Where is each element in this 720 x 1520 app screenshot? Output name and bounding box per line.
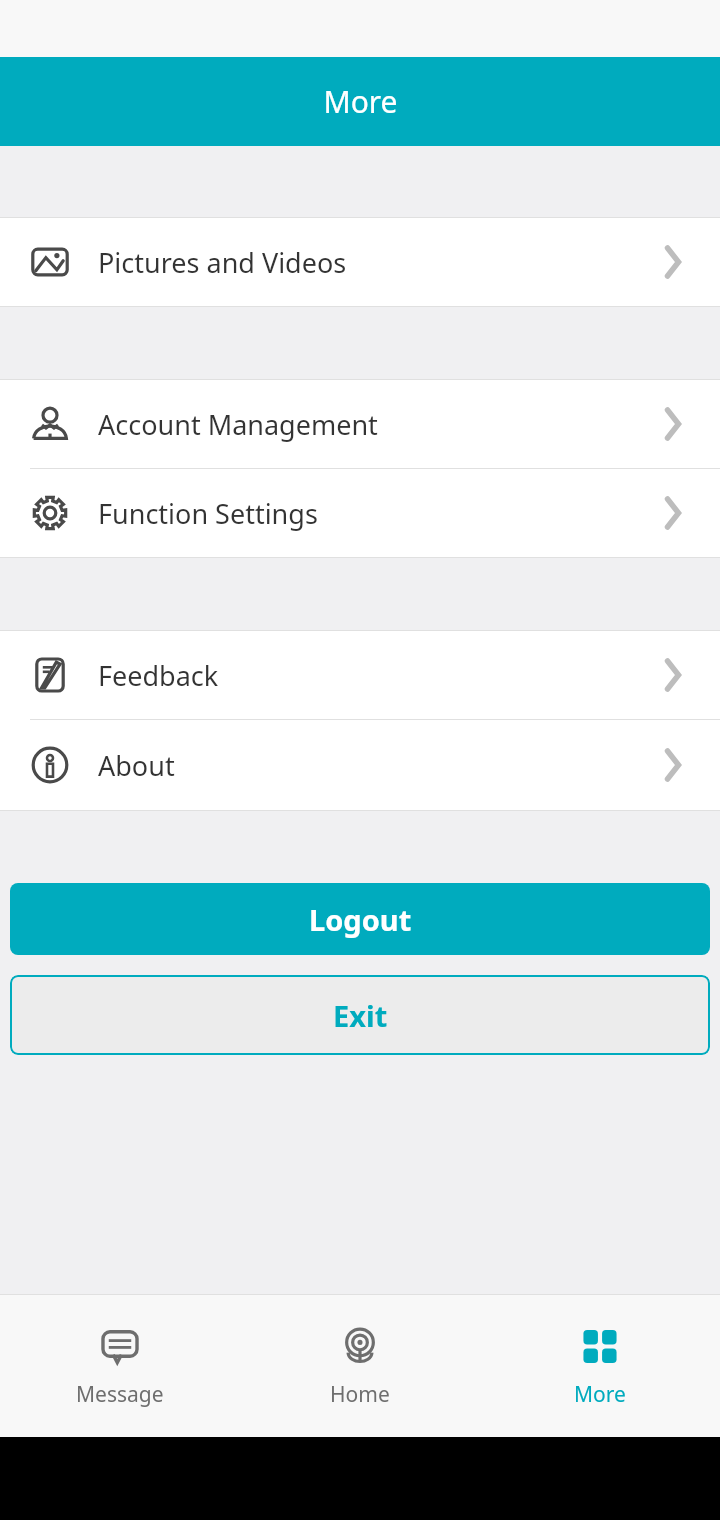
staticText: Account Management bbox=[98, 406, 378, 443]
button[interactable]: Exit bbox=[10, 975, 710, 1055]
staticText: Logout bbox=[309, 900, 412, 939]
button[interactable]: Account Management bbox=[0, 380, 720, 468]
button[interactable]: About bbox=[0, 720, 720, 810]
button[interactable]: Message bbox=[0, 1295, 240, 1437]
staticText: Function Settings bbox=[98, 495, 318, 532]
staticText: Pictures and Videos bbox=[98, 244, 347, 281]
button[interactable]: Feedback bbox=[0, 631, 720, 719]
staticText: Message bbox=[76, 1380, 164, 1409]
staticText: Feedback bbox=[98, 657, 219, 694]
button[interactable]: Pictures and Videos bbox=[0, 218, 720, 306]
button[interactable]: Logout bbox=[10, 883, 710, 955]
staticText: More bbox=[574, 1380, 626, 1409]
button[interactable]: Function Settings bbox=[0, 469, 720, 557]
staticText: Home bbox=[330, 1380, 390, 1409]
staticText: Exit bbox=[333, 996, 388, 1035]
button[interactable]: Home bbox=[240, 1295, 480, 1437]
staticText: About bbox=[98, 747, 175, 784]
staticText: More bbox=[323, 81, 398, 122]
button[interactable]: More bbox=[480, 1295, 720, 1437]
